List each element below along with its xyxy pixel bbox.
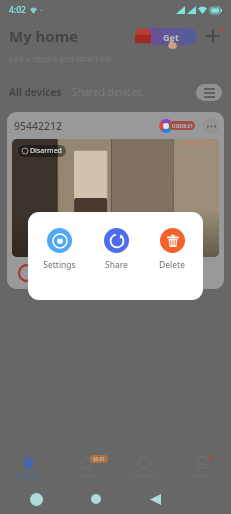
button[interactable]: Share bbox=[91, 226, 141, 273]
button[interactable]: $0.01 bbox=[57, 451, 115, 484]
staticText: All devices bbox=[9, 85, 62, 99]
button[interactable]: Alarm bbox=[17, 263, 37, 283]
button[interactable]: List options bbox=[196, 84, 222, 101]
button[interactable]: Get bbox=[135, 26, 197, 46]
staticText: Live a secure and smart life bbox=[9, 53, 112, 64]
staticText: 95442212 bbox=[14, 119, 63, 133]
staticText: $0.01 bbox=[93, 456, 105, 462]
staticText: Delete bbox=[159, 259, 185, 271]
button[interactable]: Settings bbox=[34, 226, 84, 273]
button[interactable]: Profile bbox=[173, 451, 231, 484]
staticText: 05-05-05 11:41:33 bbox=[182, 141, 216, 146]
staticText: Settings bbox=[43, 259, 76, 271]
staticText: Share bbox=[105, 259, 128, 271]
button[interactable]: More options bbox=[203, 118, 219, 134]
staticText: My home bbox=[9, 26, 79, 46]
button[interactable]: 95442212 bbox=[7, 112, 224, 289]
staticText: Disarmed bbox=[30, 146, 62, 156]
button[interactable]: Shared devices bbox=[72, 82, 143, 102]
staticText: USD$0.01 bbox=[172, 123, 193, 129]
button[interactable]: Disarmed bbox=[18, 145, 66, 157]
staticText: Shared devices bbox=[72, 85, 143, 99]
staticText: 4:02 bbox=[9, 4, 26, 16]
button[interactable]: All devices bbox=[9, 82, 62, 102]
button[interactable]: Device bbox=[0, 451, 57, 484]
button[interactable]: Delete bbox=[147, 226, 197, 273]
button[interactable]: Add device bbox=[201, 24, 225, 48]
staticText: Device bbox=[18, 471, 39, 480]
staticText: Get bbox=[163, 31, 179, 43]
